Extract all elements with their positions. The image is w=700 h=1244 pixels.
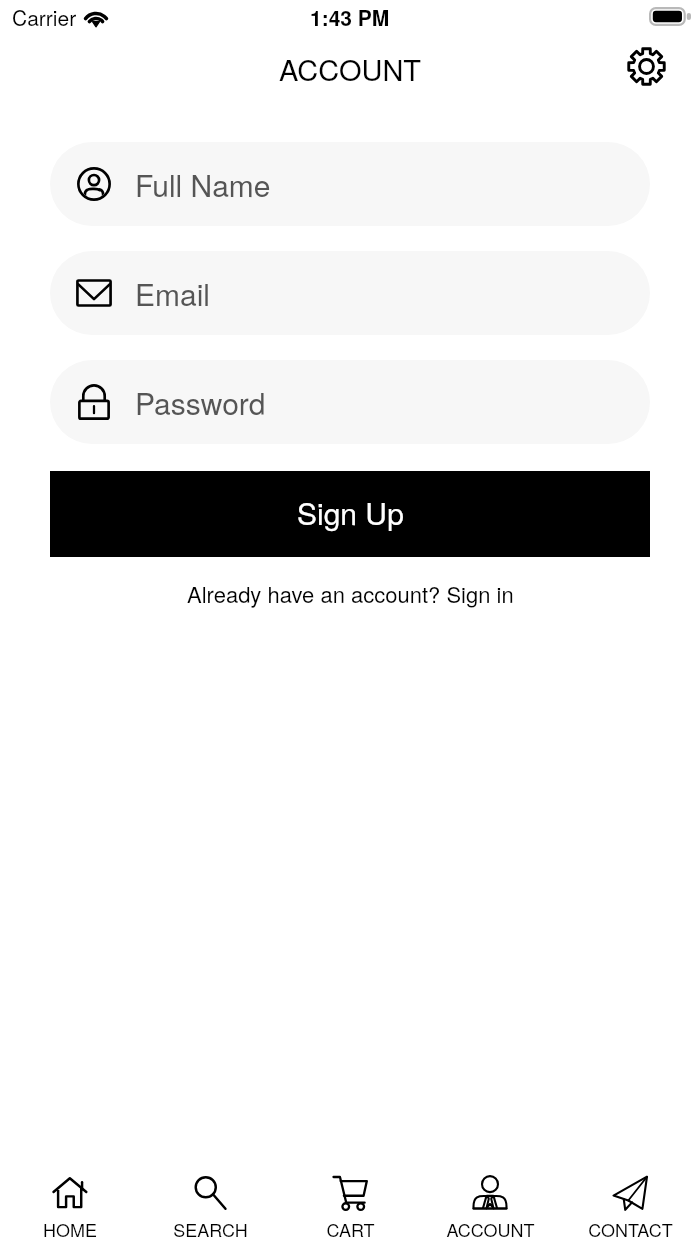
staticText: ACCOUNT	[446, 1216, 535, 1242]
button[interactable]: CART	[280, 1140, 420, 1242]
button[interactable]: Settings	[624, 44, 668, 88]
staticText: Sign Up	[297, 491, 404, 534]
button[interactable]: CONTACT	[560, 1140, 700, 1242]
staticText: Full Name	[135, 163, 271, 206]
button[interactable]: Full Name	[50, 142, 650, 226]
button[interactable]: ACCOUNT	[420, 1140, 560, 1242]
button[interactable]: Already have an account? Sign in	[185, 578, 516, 610]
button[interactable]: Sign Up	[50, 471, 650, 557]
staticText: Carrier	[12, 2, 77, 32]
staticText: 1:43 PM	[310, 2, 390, 32]
button[interactable]: Email	[50, 251, 650, 335]
staticText: CONTACT	[588, 1216, 673, 1242]
staticText: ACCOUNT	[279, 48, 422, 90]
staticText: Email	[135, 272, 210, 315]
button[interactable]: HOME	[0, 1140, 140, 1242]
button[interactable]: Password	[50, 360, 650, 444]
staticText: HOME	[43, 1216, 97, 1242]
staticText: Password	[135, 381, 266, 424]
button[interactable]: SEARCH	[140, 1140, 280, 1242]
staticText: SEARCH	[173, 1216, 248, 1242]
staticText: CART	[326, 1216, 375, 1242]
